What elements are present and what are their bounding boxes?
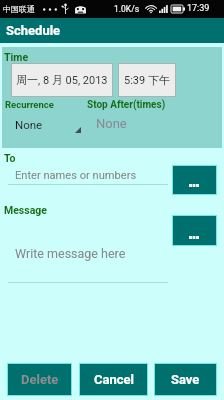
button[interactable]: 5:39 下午 xyxy=(118,63,176,97)
staticText: Schedule xyxy=(6,23,61,38)
staticText: To xyxy=(4,152,16,164)
button[interactable]: Message templates xyxy=(172,215,217,246)
button[interactable]: Enter names or numbers xyxy=(8,165,168,185)
staticText: Time xyxy=(4,51,29,63)
staticText: Message xyxy=(4,204,47,216)
button[interactable]: Delete xyxy=(7,363,72,396)
staticText: Delete xyxy=(21,372,59,387)
staticText: 周一, 8 月 05, 2013 xyxy=(16,73,108,87)
button[interactable]: Cancel xyxy=(79,363,148,396)
button[interactable]: Write message here xyxy=(8,243,168,265)
button[interactable]: Save xyxy=(154,363,217,396)
staticText: Write message here xyxy=(15,246,126,261)
button[interactable]: Pick contacts xyxy=(172,165,217,195)
staticText: None xyxy=(15,118,43,131)
staticText: 中国联通 xyxy=(3,4,35,14)
staticText: 17:39 xyxy=(187,3,210,14)
button[interactable]: 周一, 8 月 05, 2013 xyxy=(11,63,113,97)
staticText: Enter names or numbers xyxy=(15,169,137,182)
staticText: Save xyxy=(171,372,200,387)
staticText: Recurrence xyxy=(5,99,54,110)
staticText: 5:39 下午 xyxy=(124,73,170,87)
staticText: Stop After(times) xyxy=(87,99,166,111)
staticText: Cancel xyxy=(94,372,134,387)
staticText: None xyxy=(96,116,127,131)
staticText: 1.0K/s xyxy=(114,4,140,14)
